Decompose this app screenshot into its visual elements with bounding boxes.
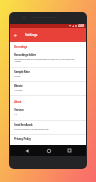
button[interactable]: Recents <box>65 146 74 155</box>
button[interactable]: Bitrate <box>10 82 86 95</box>
button[interactable]: Home <box>44 146 53 155</box>
button[interactable]: Privacy Policy <box>10 135 86 145</box>
staticText: Got any question? We are here to help <box>14 127 49 130</box>
staticText: Privacy Policy <box>14 137 31 141</box>
button[interactable]: Send feedback <box>10 121 86 134</box>
staticText: Sample Rate <box>14 70 30 74</box>
staticText: Version <box>14 108 24 112</box>
staticText: /storage/emulated/0/Android/data/com.app… <box>14 57 75 63</box>
staticText: 1.3 <box>14 112 17 115</box>
button[interactable]: Sample Rate <box>10 68 86 81</box>
button[interactable]: Recordings folder <box>10 51 86 67</box>
button[interactable]: Back <box>22 146 31 155</box>
staticText: Recordings folder <box>14 53 36 57</box>
staticText: 192 kbps <box>14 88 23 91</box>
staticText: Send feedback <box>14 123 33 127</box>
staticText: Settings <box>25 33 38 37</box>
staticText: Bitrate <box>14 84 23 88</box>
staticText: 44 kHz <box>14 74 21 77</box>
staticText: About <box>14 100 22 104</box>
button[interactable]: Back <box>10 30 21 41</box>
staticText: 4:08 <box>78 24 84 28</box>
button[interactable]: Version <box>10 106 86 120</box>
staticText: Recordings <box>14 45 28 49</box>
